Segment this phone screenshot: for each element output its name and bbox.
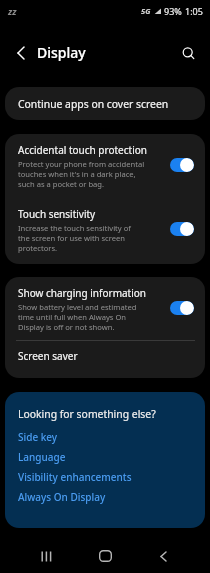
button[interactable]: Side key xyxy=(5,427,205,447)
staticText: Language xyxy=(18,450,66,464)
button[interactable]: Always On Display xyxy=(5,487,205,507)
staticText: Display is off or not shown. xyxy=(18,322,115,332)
button[interactable]: Recent apps xyxy=(28,538,64,573)
button[interactable]: Toggle on xyxy=(170,158,194,172)
staticText: 93% xyxy=(164,5,182,17)
button[interactable]: Language xyxy=(5,447,205,467)
staticText: 5G xyxy=(141,6,151,16)
button[interactable]: Show charging information xyxy=(5,277,205,340)
staticText: Accidental touch protection xyxy=(18,143,147,157)
button[interactable]: Home xyxy=(87,538,123,573)
button[interactable]: Touch sensitivity xyxy=(5,198,205,264)
button[interactable]: Navigate up xyxy=(7,39,35,67)
staticText: such as a pocket or bag. xyxy=(18,179,105,189)
staticText: Protect your phone from accidental xyxy=(18,159,145,169)
button[interactable]: Continue apps on cover screen xyxy=(5,87,205,120)
staticText: Continue apps on cover screen xyxy=(18,97,169,111)
button[interactable]: Toggle on xyxy=(170,301,194,315)
staticText: 1:05 xyxy=(185,5,203,17)
staticText: Always On Display xyxy=(18,490,106,504)
staticText: Side key xyxy=(18,430,58,444)
staticText: Visibility enhancements xyxy=(18,470,132,484)
button[interactable]: Toggle on xyxy=(170,222,194,236)
staticText: protectors. xyxy=(18,243,58,253)
staticText: Touch sensitivity xyxy=(18,207,96,221)
staticText: Screen saver xyxy=(18,349,78,363)
button[interactable]: Search xyxy=(175,40,203,68)
button[interactable]: Visibility enhancements xyxy=(5,467,205,487)
button[interactable]: Back xyxy=(145,538,181,573)
staticText: Show battery level and estimated xyxy=(18,302,137,312)
staticText: touches when it's in a dark place, xyxy=(18,169,136,179)
staticText: Display xyxy=(37,43,86,62)
staticText: time until full when Always On xyxy=(18,312,127,322)
staticText: Increase the touch sensitivity of xyxy=(18,223,131,233)
staticText: zz xyxy=(8,5,17,17)
button[interactable]: Accidental touch protection xyxy=(5,134,205,198)
button[interactable]: Screen saver xyxy=(5,341,205,378)
staticText: Looking for something else? xyxy=(18,407,156,421)
staticText: Show charging information xyxy=(18,286,147,300)
staticText: the screen for use with screen xyxy=(18,233,125,243)
